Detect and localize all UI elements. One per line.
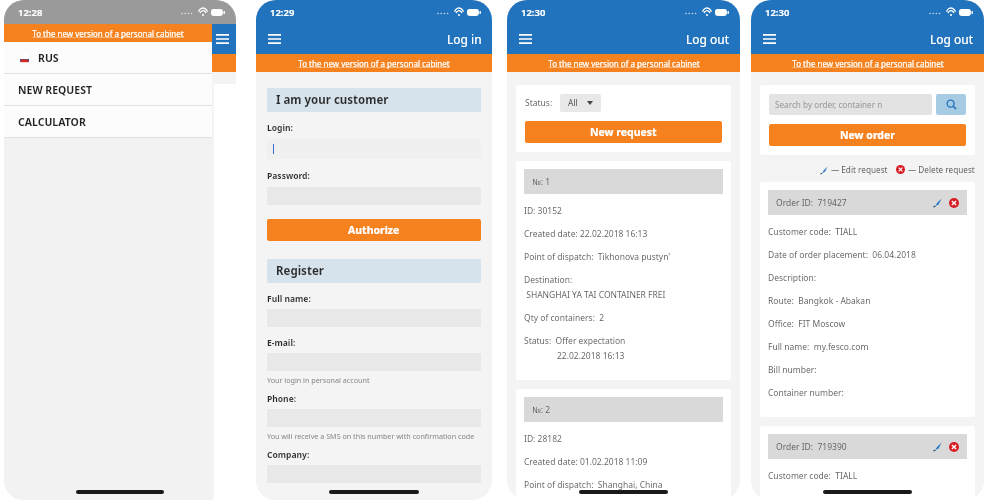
staticText: Order ID: 719427 <box>776 197 847 209</box>
staticText: Created date: 22.02.2018 16:13 <box>524 228 648 240</box>
staticText: E-mail: <box>267 337 296 349</box>
button[interactable]: CALCULATOR <box>4 106 212 137</box>
staticText: Full name: my.fesco.com <box>768 341 869 353</box>
button[interactable]: Menu <box>262 27 286 51</box>
staticText: Container number: <box>768 387 844 399</box>
staticText: Search by order, container n <box>775 99 883 110</box>
button[interactable]: To the new version of a personal cabinet <box>256 54 492 72</box>
staticText: Qty of containers: 2 <box>524 312 605 324</box>
staticText: Created date: 01.02.2018 11:09 <box>524 456 648 468</box>
staticText: To the new version of a personal cabinet <box>298 58 450 69</box>
staticText: Log in <box>447 31 482 47</box>
button[interactable]: New request <box>525 121 722 143</box>
staticText: 22.02.2018 16:13 <box>557 350 625 362</box>
button[interactable]: Search by order, container n <box>769 94 932 115</box>
staticText: ID: 30152 <box>524 205 562 217</box>
button[interactable]: Log out <box>920 27 984 51</box>
staticText: Date of order placement: 06.04.2018 <box>768 249 916 261</box>
button[interactable]: To the new version of a personal cabinet <box>751 54 984 72</box>
button[interactable]: NEW REQUEST <box>4 74 212 105</box>
staticText: Phone: <box>267 393 297 405</box>
button[interactable]: Menu <box>757 27 781 51</box>
button[interactable]: Edit request <box>933 198 942 207</box>
staticText: Status: <box>525 97 553 109</box>
staticText: Authorize <box>348 223 400 237</box>
staticText: Status: Offer expectation <box>524 335 626 347</box>
staticText: 12:29 <box>270 6 295 19</box>
staticText: Your login in personal account <box>267 375 370 385</box>
staticText: To the new version of a personal cabinet <box>32 28 184 39</box>
staticText: To the new version of a personal cabinet <box>792 58 944 69</box>
staticText: Register <box>276 263 324 279</box>
button[interactable]: Delete request <box>949 198 959 208</box>
button[interactable]: Edit request <box>933 442 942 451</box>
staticText: To the new version of a personal cabinet <box>548 58 700 69</box>
staticText: Full name: <box>267 293 311 305</box>
button[interactable]: Delete request <box>949 442 959 452</box>
staticText: Bill number: <box>768 364 817 376</box>
staticText: Office: FIT Moscow <box>768 318 846 330</box>
staticText: All <box>568 97 578 109</box>
staticText: CALCULATOR <box>18 115 86 129</box>
button[interactable]: RUS <box>4 42 212 73</box>
staticText: Log out <box>930 31 974 47</box>
staticText: 12:30 <box>521 6 546 19</box>
staticText: Customer code: TIALL <box>768 470 858 482</box>
button[interactable]: Menu <box>513 27 537 51</box>
staticText: ID: 28182 <box>524 433 562 445</box>
staticText: — Edit request <box>831 164 888 175</box>
staticText: Log out <box>686 31 730 47</box>
staticText: №: 1 <box>532 176 551 188</box>
button[interactable]: Authorize <box>267 219 481 241</box>
staticText: Description: <box>768 272 817 284</box>
button[interactable]: Search <box>936 94 966 115</box>
staticText: 12:30 <box>765 6 790 19</box>
staticText: RUS <box>38 51 59 65</box>
button[interactable]: To the new version of a personal cabinet <box>507 54 740 72</box>
button[interactable]: New order <box>769 124 966 146</box>
staticText: №: 2 <box>532 404 551 416</box>
staticText: Login: <box>267 122 293 134</box>
button[interactable]: All <box>560 94 601 112</box>
staticText: You will receive a SMS on this number wi… <box>267 431 475 441</box>
button[interactable]: Log in <box>437 27 492 51</box>
button[interactable] <box>267 139 481 159</box>
staticText: NEW REQUEST <box>18 83 93 97</box>
staticText: New request <box>590 125 657 139</box>
staticText: 12:28 <box>18 6 43 19</box>
staticText: I am your customer <box>276 92 389 108</box>
staticText: Password: <box>267 170 310 182</box>
staticText: — Delete request <box>908 164 975 175</box>
staticText: Company: <box>267 449 310 461</box>
staticText: Point of dispatch: Shanghai, China <box>524 479 663 491</box>
staticText: Order ID: 719390 <box>776 441 847 453</box>
staticText: Route: Bangkok - Abakan <box>768 295 871 307</box>
staticText: New order <box>840 128 895 142</box>
button[interactable]: Log out <box>676 27 740 51</box>
staticText: Destination: <box>524 274 573 286</box>
staticText: Customer code: TIALL <box>768 226 858 238</box>
staticText: SHANGHAI YA TAI CONTAINER FREI <box>524 289 666 301</box>
staticText: Point of dispatch: Tikhonova pustyn' <box>524 251 671 263</box>
button[interactable]: To the new version of a personal cabinet <box>4 24 212 42</box>
